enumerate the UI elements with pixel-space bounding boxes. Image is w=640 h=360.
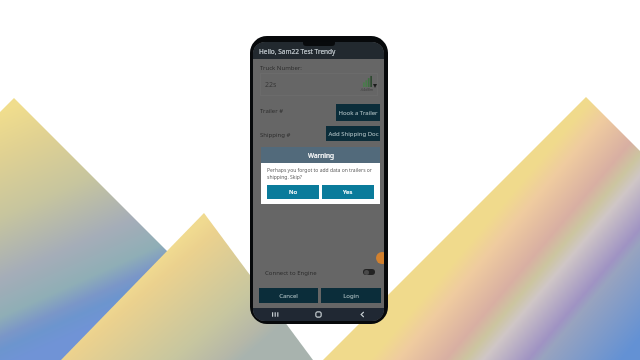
button[interactable]: Connect to Engine [363,269,375,275]
staticText: Add Shipping Doc [328,130,379,138]
button[interactable]: Login [321,288,381,303]
button[interactable]: Back [340,308,384,321]
button[interactable]: Yes [322,185,374,199]
button[interactable]: Cancel [259,288,318,303]
staticText: Truck Number: [260,64,302,72]
staticText: Warning [308,151,334,160]
staticText: 22s [265,80,277,90]
button[interactable]: Hook a Trailer [336,104,380,121]
button[interactable]: Recents [253,308,296,321]
staticText: -64dBm [360,87,374,92]
button[interactable]: 22s [260,73,378,96]
staticText: No [289,188,298,196]
button[interactable]: No [267,185,319,199]
staticText: Trailer # [260,107,284,115]
staticText: Login [343,292,359,300]
staticText: Hook a Trailer [338,109,378,117]
staticText: Hello, Sam22 Test Trendy [259,47,336,56]
staticText: Cancel [279,292,298,300]
staticText: Yes [343,188,353,196]
staticText: Perhaps you forgot to add data on traile… [267,167,374,181]
button[interactable]: Home [296,308,340,321]
staticText: Connect to Engine [265,269,317,277]
staticText: Shipping # [260,131,291,139]
button[interactable]: Add Shipping Doc [326,126,380,141]
